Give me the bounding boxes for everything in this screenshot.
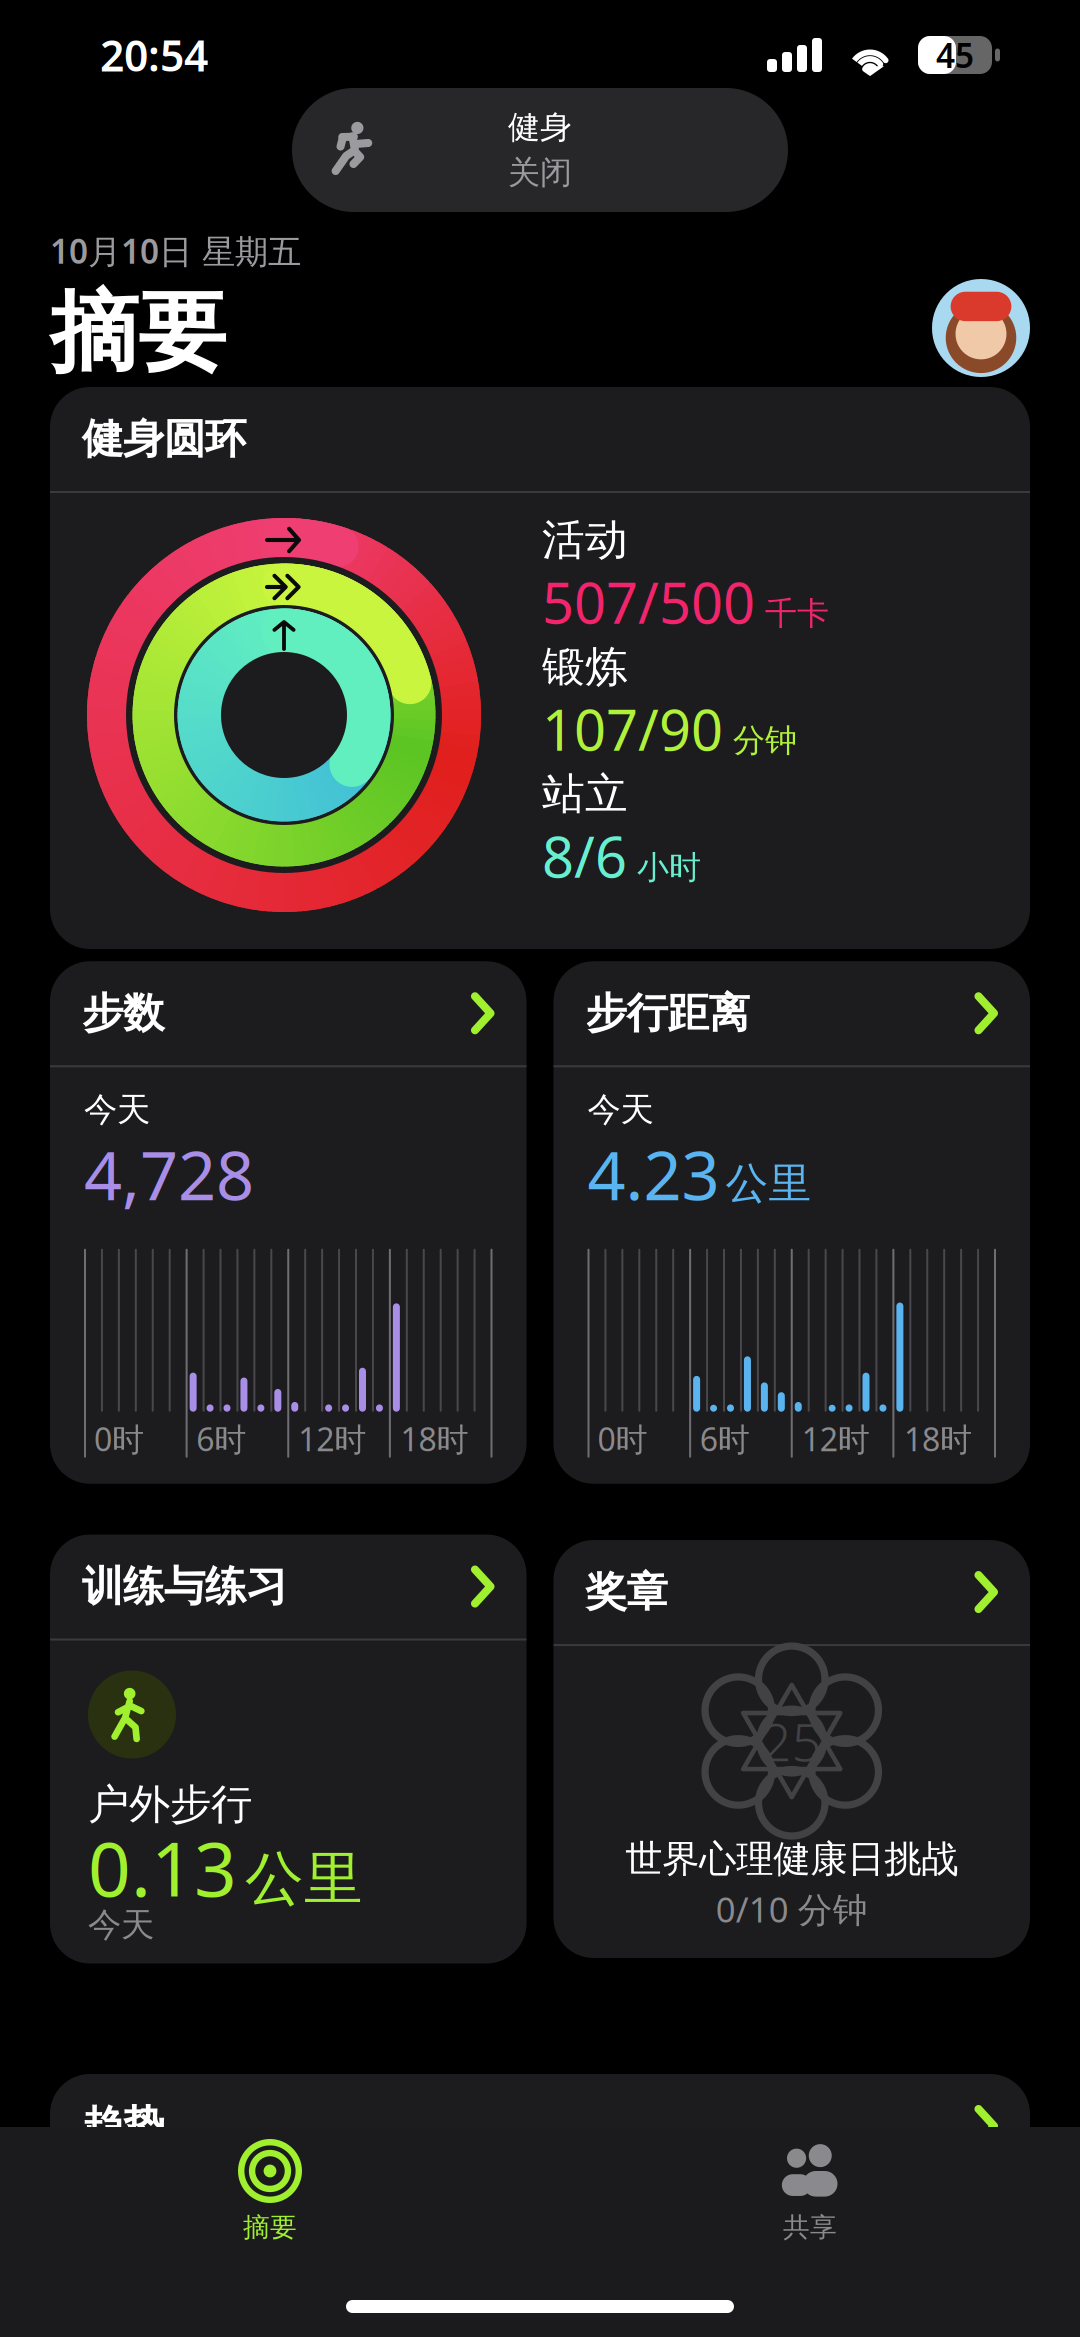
button[interactable]: 奖章 — [553, 1540, 1030, 1958]
staticText: 关闭 — [508, 153, 572, 192]
staticText: 今天 — [88, 1904, 154, 1945]
staticText: 世界心理健康日挑战 — [625, 1836, 958, 1882]
staticText: 健身圆环 — [82, 414, 246, 464]
button[interactable]: 步行距离 — [553, 961, 1030, 1484]
staticText: 站立 — [542, 768, 628, 820]
staticText: 12时 — [802, 1417, 870, 1460]
staticText: 分钟 — [733, 721, 797, 760]
staticText: 4.23 — [587, 1130, 719, 1219]
staticText: 4,728 — [84, 1130, 254, 1219]
staticText: 步行距离 — [585, 988, 749, 1039]
staticText: 小时 — [637, 848, 701, 887]
staticText: 0.13 — [88, 1818, 237, 1917]
staticText: 奖章 — [585, 1567, 667, 1617]
button[interactable]: 摘要 — [0, 2139, 540, 2244]
staticText: 趋势 — [82, 2101, 164, 2151]
button[interactable]: 训练与练习 — [50, 1534, 526, 1963]
staticText: 10月10日 星期五 — [50, 229, 301, 273]
staticText: 户外步行 — [88, 1779, 252, 1830]
staticText: 今天 — [587, 1089, 653, 1130]
button[interactable]: 个人资料 — [932, 279, 1030, 377]
button[interactable]: 步数 — [50, 961, 526, 1484]
staticText: 8/6 — [542, 819, 627, 893]
staticText: 今天 — [84, 1089, 150, 1130]
staticText: 25 — [762, 1706, 822, 1776]
button[interactable]: 共享 — [540, 2139, 1080, 2244]
staticText: 公里 — [245, 1843, 363, 1915]
staticText: 6时 — [700, 1417, 750, 1460]
staticText: 45 — [936, 33, 974, 77]
button[interactable]: 趋势 — [50, 2074, 1030, 2337]
staticText: 18时 — [400, 1417, 468, 1460]
staticText: 活动 — [542, 514, 628, 566]
staticText: 0时 — [94, 1417, 144, 1460]
staticText: 0/10 分钟 — [716, 1886, 868, 1932]
staticText: 摘要 — [50, 279, 226, 387]
staticText: 健身 — [508, 108, 572, 147]
staticText: 训练与练习 — [82, 1561, 287, 1612]
staticText: 6时 — [196, 1417, 246, 1460]
staticText: 12时 — [298, 1417, 366, 1460]
staticText: 公里 — [725, 1157, 811, 1210]
staticText: 锻炼 — [542, 641, 628, 693]
staticText: 18时 — [904, 1417, 972, 1460]
staticText: 千卡 — [765, 594, 829, 633]
staticText: 0时 — [597, 1417, 647, 1460]
staticText: 107/90 — [542, 692, 723, 766]
staticText: 共享 — [783, 2211, 837, 2244]
staticText: 507/500 — [542, 565, 755, 639]
staticText: 20:54 — [100, 27, 208, 83]
staticText: 摘要 — [243, 2211, 297, 2244]
staticText: 步数 — [82, 988, 164, 1039]
